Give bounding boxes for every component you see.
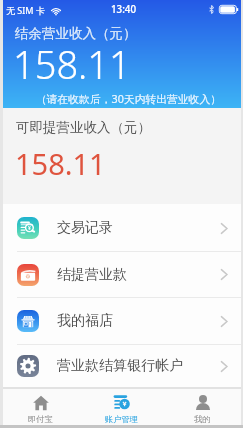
staticText: 交易记录: [57, 219, 113, 237]
staticText: 我的福店: [57, 312, 113, 330]
staticText: 结余营业收入（元）: [15, 25, 137, 42]
staticText: （请在收款后，30天内转出营业收入）: [0, 91, 221, 106]
staticText: 13:40: [111, 3, 137, 16]
button[interactable]: 账户管理: [81, 389, 162, 428]
staticText: 即付宝: [28, 414, 53, 424]
staticText: 账户管理: [105, 414, 138, 424]
button[interactable]: 营业款结算银行帐户: [0, 345, 243, 387]
staticText: 我的: [194, 414, 211, 424]
button[interactable]: 交易记录: [0, 205, 243, 251]
button[interactable]: 即付宝: [0, 389, 81, 428]
staticText: 结提营业款: [57, 266, 127, 284]
button[interactable]: 我的: [162, 389, 243, 428]
other: 我的: [195, 395, 211, 411]
other: 即付宝: [33, 395, 49, 411]
other: 账户管理: [114, 395, 130, 411]
staticText: 营业款结算银行帐户: [57, 357, 183, 375]
staticText: 158.11: [13, 38, 131, 90]
button[interactable]: 结提营业款: [0, 252, 243, 297]
staticText: 可即提营业收入（元）: [16, 119, 151, 136]
staticText: 158.11: [15, 144, 106, 183]
button[interactable]: 我的福店: [0, 298, 243, 344]
staticText: 无 SIM 卡: [6, 4, 45, 16]
